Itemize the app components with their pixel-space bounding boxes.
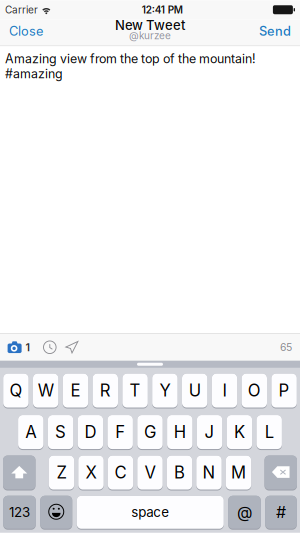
staticText: R xyxy=(100,380,111,401)
staticText: Amazing view from the top of the mountai… xyxy=(5,51,256,81)
staticText: E xyxy=(70,380,80,401)
staticText: S xyxy=(55,422,66,442)
button[interactable]: O xyxy=(242,374,267,409)
staticText: Q xyxy=(9,380,22,401)
staticText: T xyxy=(130,380,141,401)
button[interactable]: L xyxy=(256,415,282,450)
button[interactable]: X xyxy=(78,456,104,491)
button[interactable]: Close xyxy=(0,19,52,45)
button[interactable]: @ xyxy=(228,496,261,530)
button[interactable]: 123 xyxy=(3,496,36,530)
staticText: K xyxy=(234,422,245,442)
button[interactable]: M xyxy=(226,456,251,491)
staticText: J xyxy=(205,422,215,442)
button[interactable]: H xyxy=(167,415,192,450)
staticText: P xyxy=(279,380,290,401)
button[interactable]: Emoji xyxy=(40,496,72,530)
button[interactable]: P xyxy=(271,374,297,409)
button[interactable]: Delete xyxy=(264,456,297,491)
button[interactable]: 1 xyxy=(0,334,36,361)
staticText: 12:41 PM xyxy=(142,4,183,16)
staticText: H xyxy=(174,422,186,442)
staticText: C xyxy=(114,462,126,483)
staticText: O xyxy=(248,380,261,401)
staticText: Y xyxy=(159,380,170,401)
button[interactable]: V xyxy=(137,456,163,491)
staticText: M xyxy=(231,462,246,483)
staticText: @kurzee xyxy=(129,30,171,42)
button[interactable]: Y xyxy=(152,374,178,409)
staticText: N xyxy=(202,462,215,483)
button[interactable]: Z xyxy=(49,456,74,491)
button[interactable]: E xyxy=(63,374,88,409)
button[interactable]: B xyxy=(167,456,192,491)
staticText: # xyxy=(276,503,286,522)
button[interactable]: Location xyxy=(63,334,86,361)
staticText: G xyxy=(144,422,156,442)
button[interactable]: D xyxy=(78,415,103,450)
button[interactable]: A xyxy=(18,415,43,450)
button[interactable]: K xyxy=(227,415,252,450)
button[interactable]: T xyxy=(122,374,148,409)
staticText: W xyxy=(38,380,54,401)
staticText: New Tweet xyxy=(115,17,185,33)
button[interactable]: I xyxy=(212,374,237,409)
staticText: Z xyxy=(56,462,66,483)
button[interactable]: F xyxy=(107,415,133,450)
staticText: U xyxy=(189,380,201,401)
staticText: @ xyxy=(237,503,252,522)
button[interactable]: R xyxy=(93,374,118,409)
staticText: Carrier xyxy=(5,4,38,16)
button[interactable]: Shift xyxy=(3,456,35,491)
staticText: A xyxy=(25,422,36,442)
button[interactable]: N xyxy=(196,456,222,491)
button[interactable]: Schedule xyxy=(36,334,63,361)
staticText: Close xyxy=(9,23,43,39)
staticText: X xyxy=(85,462,96,483)
staticText: 1 xyxy=(25,341,30,354)
button[interactable]: W xyxy=(33,374,58,409)
button[interactable]: C xyxy=(108,456,133,491)
staticText: F xyxy=(115,422,125,442)
staticText: B xyxy=(174,462,185,483)
button[interactable]: # xyxy=(265,496,297,530)
staticText: 123 xyxy=(9,504,30,520)
button[interactable]: Send xyxy=(250,19,300,45)
button[interactable]: S xyxy=(48,415,73,450)
button[interactable]: U xyxy=(182,374,207,409)
button[interactable]: J xyxy=(197,415,222,450)
staticText: D xyxy=(84,422,96,442)
staticText: I xyxy=(222,380,226,401)
staticText: Send xyxy=(259,23,291,39)
staticText: V xyxy=(144,462,155,483)
staticText: space xyxy=(131,504,169,520)
button[interactable]: Q xyxy=(3,374,29,409)
button[interactable]: G xyxy=(137,415,163,450)
staticText: 65 xyxy=(280,341,292,354)
button[interactable]: space xyxy=(77,496,224,530)
staticText: L xyxy=(265,422,274,442)
